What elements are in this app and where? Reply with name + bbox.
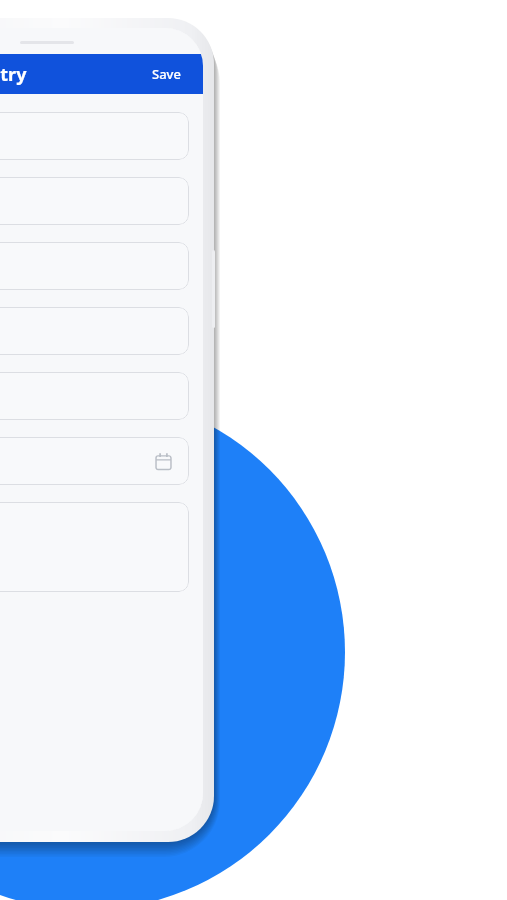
button[interactable]: Pick date — [0, 437, 189, 485]
button[interactable]: Pick date — [150, 448, 176, 474]
button[interactable] — [0, 502, 189, 592]
button[interactable]: Name — [0, 112, 189, 160]
button[interactable]: Amount — [0, 372, 189, 420]
button[interactable] — [0, 307, 189, 355]
staticText: Save — [152, 65, 181, 83]
staticText: Cheque Entry — [0, 62, 27, 87]
button[interactable]: Save — [146, 61, 187, 87]
button[interactable]: Number — [0, 177, 189, 225]
button[interactable] — [0, 242, 189, 290]
